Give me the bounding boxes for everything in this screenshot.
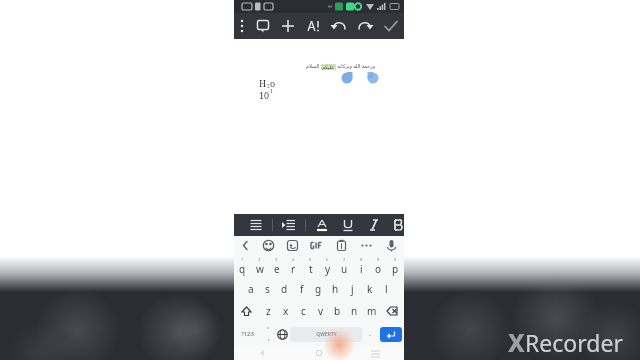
- staticText: r: [291, 262, 296, 276]
- button[interactable]: Emoji: [256, 236, 280, 255]
- button[interactable]: z: [259, 300, 277, 322]
- button[interactable]: Period: [362, 322, 377, 346]
- button[interactable]: Text format: [300, 13, 326, 39]
- staticText: 6: [326, 257, 329, 262]
- button[interactable]: ?123: [234, 322, 261, 346]
- staticText: e: [274, 262, 280, 276]
- staticText: .: [369, 329, 371, 339]
- button[interactable]: l: [378, 278, 395, 300]
- staticText: Recorder: [525, 327, 623, 358]
- button[interactable]: Enter: [380, 327, 402, 342]
- button[interactable]: Change language: [275, 322, 290, 346]
- staticText: u: [341, 262, 348, 276]
- button[interactable]: s: [259, 278, 276, 300]
- button[interactable]: GIF: [304, 236, 329, 255]
- staticText: v: [318, 304, 324, 318]
- button[interactable]: Back: [234, 346, 290, 360]
- button[interactable]: 0: [387, 255, 404, 278]
- button[interactable]: f: [293, 278, 310, 300]
- staticText: d: [281, 282, 288, 296]
- staticText: H: [259, 77, 267, 89]
- button[interactable]: More: [354, 236, 379, 255]
- button[interactable]: m: [363, 300, 380, 322]
- button[interactable]: Stickers: [280, 236, 304, 255]
- button[interactable]: b: [329, 300, 346, 322]
- button[interactable]: Underline: [340, 217, 356, 233]
- button[interactable]: Indent: [281, 217, 297, 233]
- button[interactable]: Text color: [314, 217, 330, 233]
- staticText: s: [265, 282, 270, 296]
- staticText: y: [325, 262, 331, 276]
- staticText: 1: [241, 257, 244, 262]
- staticText: o: [375, 262, 382, 276]
- staticText: °: [267, 326, 270, 333]
- staticText: m: [367, 304, 377, 318]
- button[interactable]: g: [310, 278, 327, 300]
- staticText: z: [266, 304, 271, 318]
- button[interactable]: Insert: [275, 13, 300, 39]
- staticText: n: [351, 304, 358, 318]
- button[interactable]: v: [312, 300, 329, 322]
- staticText: 10: [259, 89, 270, 101]
- button[interactable]: j: [344, 278, 361, 300]
- button[interactable]: c: [295, 300, 312, 322]
- staticText: 0: [394, 257, 397, 262]
- staticText: f: [300, 282, 304, 296]
- staticText: 7: [343, 257, 346, 262]
- staticText: 8: [360, 257, 363, 262]
- staticText: السلام: [306, 63, 321, 70]
- staticText: c: [301, 304, 306, 318]
- button[interactable]: Comma: [261, 322, 275, 346]
- button[interactable]: Clipboard: [329, 236, 354, 255]
- button[interactable]: a: [242, 278, 259, 300]
- button[interactable]: More options: [234, 13, 250, 39]
- button[interactable]: h: [327, 278, 344, 300]
- staticText: 4: [292, 257, 295, 262]
- button[interactable]: Comment: [250, 13, 275, 39]
- staticText: 2: [267, 83, 270, 90]
- staticText: x: [283, 304, 289, 318]
- button[interactable]: Redo: [352, 13, 378, 39]
- button[interactable]: 3: [268, 255, 285, 278]
- button[interactable]: 1: [234, 255, 251, 278]
- button[interactable]: Voice input: [379, 236, 404, 255]
- staticText: عليكم: [322, 64, 335, 70]
- staticText: 5: [309, 257, 312, 262]
- button[interactable]: 6: [319, 255, 336, 278]
- button[interactable]: 8: [353, 255, 370, 278]
- button[interactable]: k: [361, 278, 378, 300]
- button[interactable]: 5: [302, 255, 319, 278]
- staticText: i: [360, 262, 363, 276]
- staticText: ورحمة الله وبركاته: [336, 63, 376, 70]
- staticText: k: [367, 282, 373, 296]
- button[interactable]: Recent apps: [347, 346, 404, 360]
- staticText: a: [248, 282, 254, 296]
- staticText: ,: [268, 333, 270, 343]
- button[interactable]: 7: [336, 255, 353, 278]
- staticText: h: [332, 282, 339, 296]
- staticText: 2: [258, 257, 261, 262]
- button[interactable]: Shift: [234, 300, 259, 322]
- button[interactable]: QWERTY: [290, 327, 362, 342]
- button[interactable]: Done: [378, 13, 404, 39]
- staticText: g: [315, 282, 322, 296]
- button[interactable]: n: [346, 300, 363, 322]
- button[interactable]: d: [276, 278, 293, 300]
- button[interactable]: Bold: [392, 217, 404, 233]
- staticText: 9: [377, 257, 380, 262]
- staticText: 1: [270, 88, 273, 95]
- button[interactable]: Italic: [366, 217, 382, 233]
- button[interactable]: Align: [248, 217, 264, 233]
- button[interactable]: Home: [290, 346, 347, 360]
- button[interactable]: Back: [234, 236, 256, 255]
- button[interactable]: 9: [370, 255, 387, 278]
- button[interactable]: 4: [285, 255, 302, 278]
- button[interactable]: 2: [251, 255, 268, 278]
- button[interactable]: x: [277, 300, 295, 322]
- button[interactable]: Backspace: [380, 300, 404, 322]
- staticText: QWERTY: [316, 331, 337, 338]
- staticText: w: [256, 262, 264, 276]
- staticText: j: [351, 282, 354, 296]
- staticText: p: [392, 262, 399, 276]
- button[interactable]: Undo: [326, 13, 352, 39]
